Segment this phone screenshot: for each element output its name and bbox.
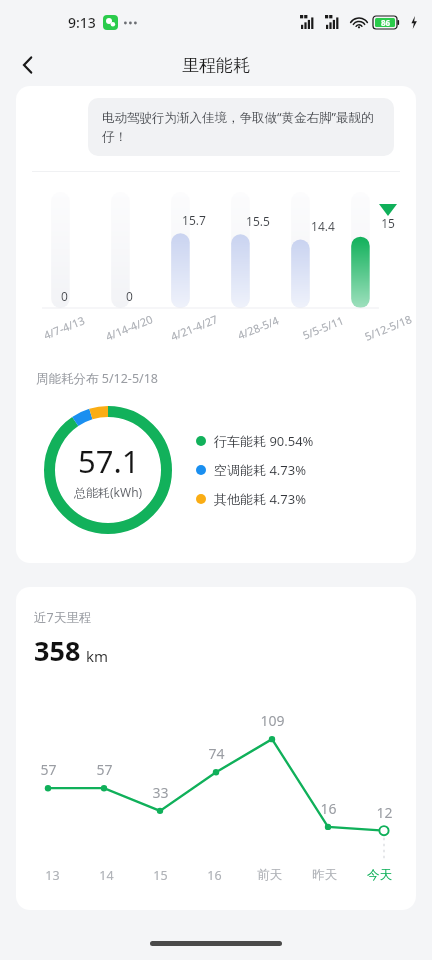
staticText: 16 (320, 799, 337, 818)
staticText: 15.5 (246, 213, 270, 229)
staticText: 0 (126, 288, 133, 304)
staticText: 86 (381, 17, 391, 28)
staticText: 4/7-4/13 (41, 312, 87, 343)
staticText: 前天 (257, 867, 282, 883)
staticText: 9:13 (68, 13, 96, 32)
staticText: 57 (40, 760, 57, 779)
staticText: 57.1 (78, 440, 140, 482)
staticText: 昨天 (312, 867, 337, 883)
staticText: 其他能耗 4.73% (214, 490, 306, 508)
button[interactable]: Back (8, 45, 48, 85)
staticText: 总能耗(kWh) (74, 484, 143, 500)
staticText: 4/28-5/4 (235, 312, 281, 343)
staticText: 358 (34, 632, 81, 669)
staticText: km (86, 646, 109, 666)
staticText: 15.7 (182, 212, 206, 228)
staticText: 行车能耗 90.54% (214, 432, 314, 450)
staticText: 4/14-4/20 (103, 311, 155, 344)
staticText: 15 (381, 215, 395, 231)
staticText: 14.4 (311, 218, 335, 234)
staticText: 109 (260, 711, 285, 730)
staticText: 13 (45, 867, 60, 884)
staticText: 周能耗分布 5/12-5/18 (36, 370, 158, 387)
staticText: 电动驾驶行为渐入佳境，争取做“黄金右脚”最靓的仔！ (102, 109, 380, 145)
staticText: 4/21-4/27 (168, 311, 220, 344)
staticText: 15 (153, 867, 168, 884)
staticText: 16 (207, 867, 222, 884)
staticText: 5/5-5/11 (300, 312, 346, 343)
staticText: 5/12-5/18 (362, 311, 414, 344)
staticText: 57 (96, 760, 113, 779)
staticText: 近7天里程 (34, 609, 92, 626)
staticText: 0 (61, 288, 68, 304)
staticText: 今天 (367, 867, 392, 883)
staticText: 14 (99, 867, 114, 884)
staticText: 里程能耗 (182, 55, 250, 76)
staticText: 33 (152, 783, 169, 802)
staticText: 74 (208, 744, 225, 763)
staticText: 空调能耗 4.73% (214, 461, 306, 479)
staticText: 12 (376, 803, 393, 822)
